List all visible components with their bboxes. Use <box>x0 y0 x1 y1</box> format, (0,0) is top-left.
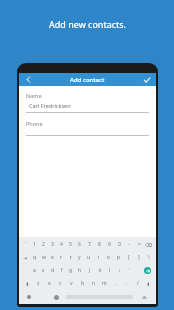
button[interactable]: 1 <box>30 238 39 251</box>
staticText: l <box>109 267 111 274</box>
staticText: 1 <box>33 241 36 248</box>
staticText: 7 <box>88 241 91 248</box>
button[interactable]: ⬆ <box>21 277 33 290</box>
staticText: o <box>107 254 111 261</box>
button[interactable]: n <box>88 277 99 290</box>
button[interactable]: h <box>75 264 85 277</box>
button[interactable]: e <box>48 251 57 264</box>
staticText: t <box>70 254 72 261</box>
staticText: Name <box>26 92 42 99</box>
button[interactable]: l <box>105 264 115 277</box>
button[interactable]: 7 <box>84 238 94 251</box>
staticText: y <box>78 254 81 261</box>
staticText: = <box>138 241 141 248</box>
staticText: 4 <box>60 241 63 248</box>
button[interactable]: ; <box>115 264 125 277</box>
button[interactable]: Emoji <box>49 290 64 304</box>
staticText: 5 <box>69 241 72 248</box>
staticText: 3 <box>51 241 54 248</box>
button[interactable]: f <box>57 264 66 277</box>
staticText: , <box>115 280 117 287</box>
button[interactable]: g <box>66 264 75 277</box>
button[interactable]: = <box>134 238 144 251</box>
button[interactable]: p <box>114 251 124 264</box>
staticText: . <box>126 280 128 287</box>
button[interactable]: Space <box>64 290 134 304</box>
button[interactable]: x <box>44 277 55 290</box>
button[interactable]: , <box>110 277 121 290</box>
button[interactable]: [ <box>124 251 134 264</box>
staticText: [ <box>128 254 130 261</box>
button[interactable]: j <box>85 264 95 277</box>
button[interactable]: 8 <box>94 238 104 251</box>
staticText: v <box>70 280 73 287</box>
staticText: f <box>61 267 63 274</box>
button[interactable]: 2 <box>39 238 48 251</box>
staticText: - <box>128 241 130 248</box>
button[interactable]: s <box>39 264 48 277</box>
button[interactable]: a <box>30 264 39 277</box>
button[interactable]: 0 <box>114 238 124 251</box>
button[interactable]: ⌫ <box>144 238 154 251</box>
staticText: i <box>98 254 100 261</box>
staticText: s <box>42 267 45 274</box>
button[interactable]: u <box>84 251 94 264</box>
button[interactable]: t <box>66 251 75 264</box>
staticText: Add new contacts. <box>49 18 126 30</box>
button[interactable]: Hide keyboard <box>134 290 154 304</box>
staticText: ⬆ <box>146 281 151 287</box>
button[interactable]: ' <box>125 264 135 277</box>
staticText: / <box>137 280 139 287</box>
button[interactable]: / <box>132 277 143 290</box>
staticText: Add contact <box>70 76 105 84</box>
button[interactable]: k <box>95 264 105 277</box>
button[interactable]: w <box>39 251 48 264</box>
button[interactable]: q <box>30 251 39 264</box>
staticText: Phone <box>26 120 43 127</box>
button[interactable]: 6 <box>75 238 84 251</box>
button[interactable]: Enter <box>141 264 154 277</box>
staticText: a <box>33 267 36 274</box>
button[interactable]: m <box>99 277 110 290</box>
button[interactable]: ⇥ <box>21 251 30 264</box>
staticText: ` <box>25 241 27 248</box>
staticText: b <box>81 280 85 287</box>
button[interactable]: \ <box>144 251 154 264</box>
staticText: ⇥ <box>23 255 28 261</box>
staticText: p <box>117 254 121 261</box>
button[interactable]: ] <box>134 251 144 264</box>
button[interactable]: c <box>55 277 66 290</box>
staticText: d <box>51 267 55 274</box>
staticText: n <box>92 280 96 287</box>
staticText: ⌫ <box>145 242 153 248</box>
button[interactable]: Back <box>19 73 37 86</box>
button[interactable]: ⬆ <box>143 277 154 290</box>
staticText: ' <box>129 267 131 274</box>
staticText: g <box>69 267 73 274</box>
button[interactable]: Save contact <box>138 73 156 86</box>
button[interactable]: Carl Fredricksen <box>26 102 149 109</box>
staticText: \ <box>148 254 150 261</box>
button[interactable]: y <box>75 251 84 264</box>
button[interactable]: 4 <box>57 238 66 251</box>
button[interactable]: - <box>124 238 134 251</box>
button[interactable]: o <box>104 251 114 264</box>
button[interactable]: Settings <box>21 290 36 304</box>
staticText: x <box>48 280 51 287</box>
button[interactable]: i <box>94 251 104 264</box>
button[interactable]: r <box>57 251 66 264</box>
staticText: k <box>99 267 102 274</box>
staticText: q <box>33 254 37 261</box>
button[interactable]: z <box>33 277 44 290</box>
button[interactable]: 5 <box>66 238 75 251</box>
button[interactable]: d <box>48 264 57 277</box>
button[interactable]: 9 <box>104 238 114 251</box>
staticText: e <box>51 254 54 261</box>
button[interactable]: ` <box>21 238 30 251</box>
button[interactable]: 3 <box>48 238 57 251</box>
button[interactable]: . <box>121 277 132 290</box>
button[interactable]: v <box>66 277 77 290</box>
button[interactable]: b <box>77 277 88 290</box>
staticText: m <box>102 280 107 287</box>
